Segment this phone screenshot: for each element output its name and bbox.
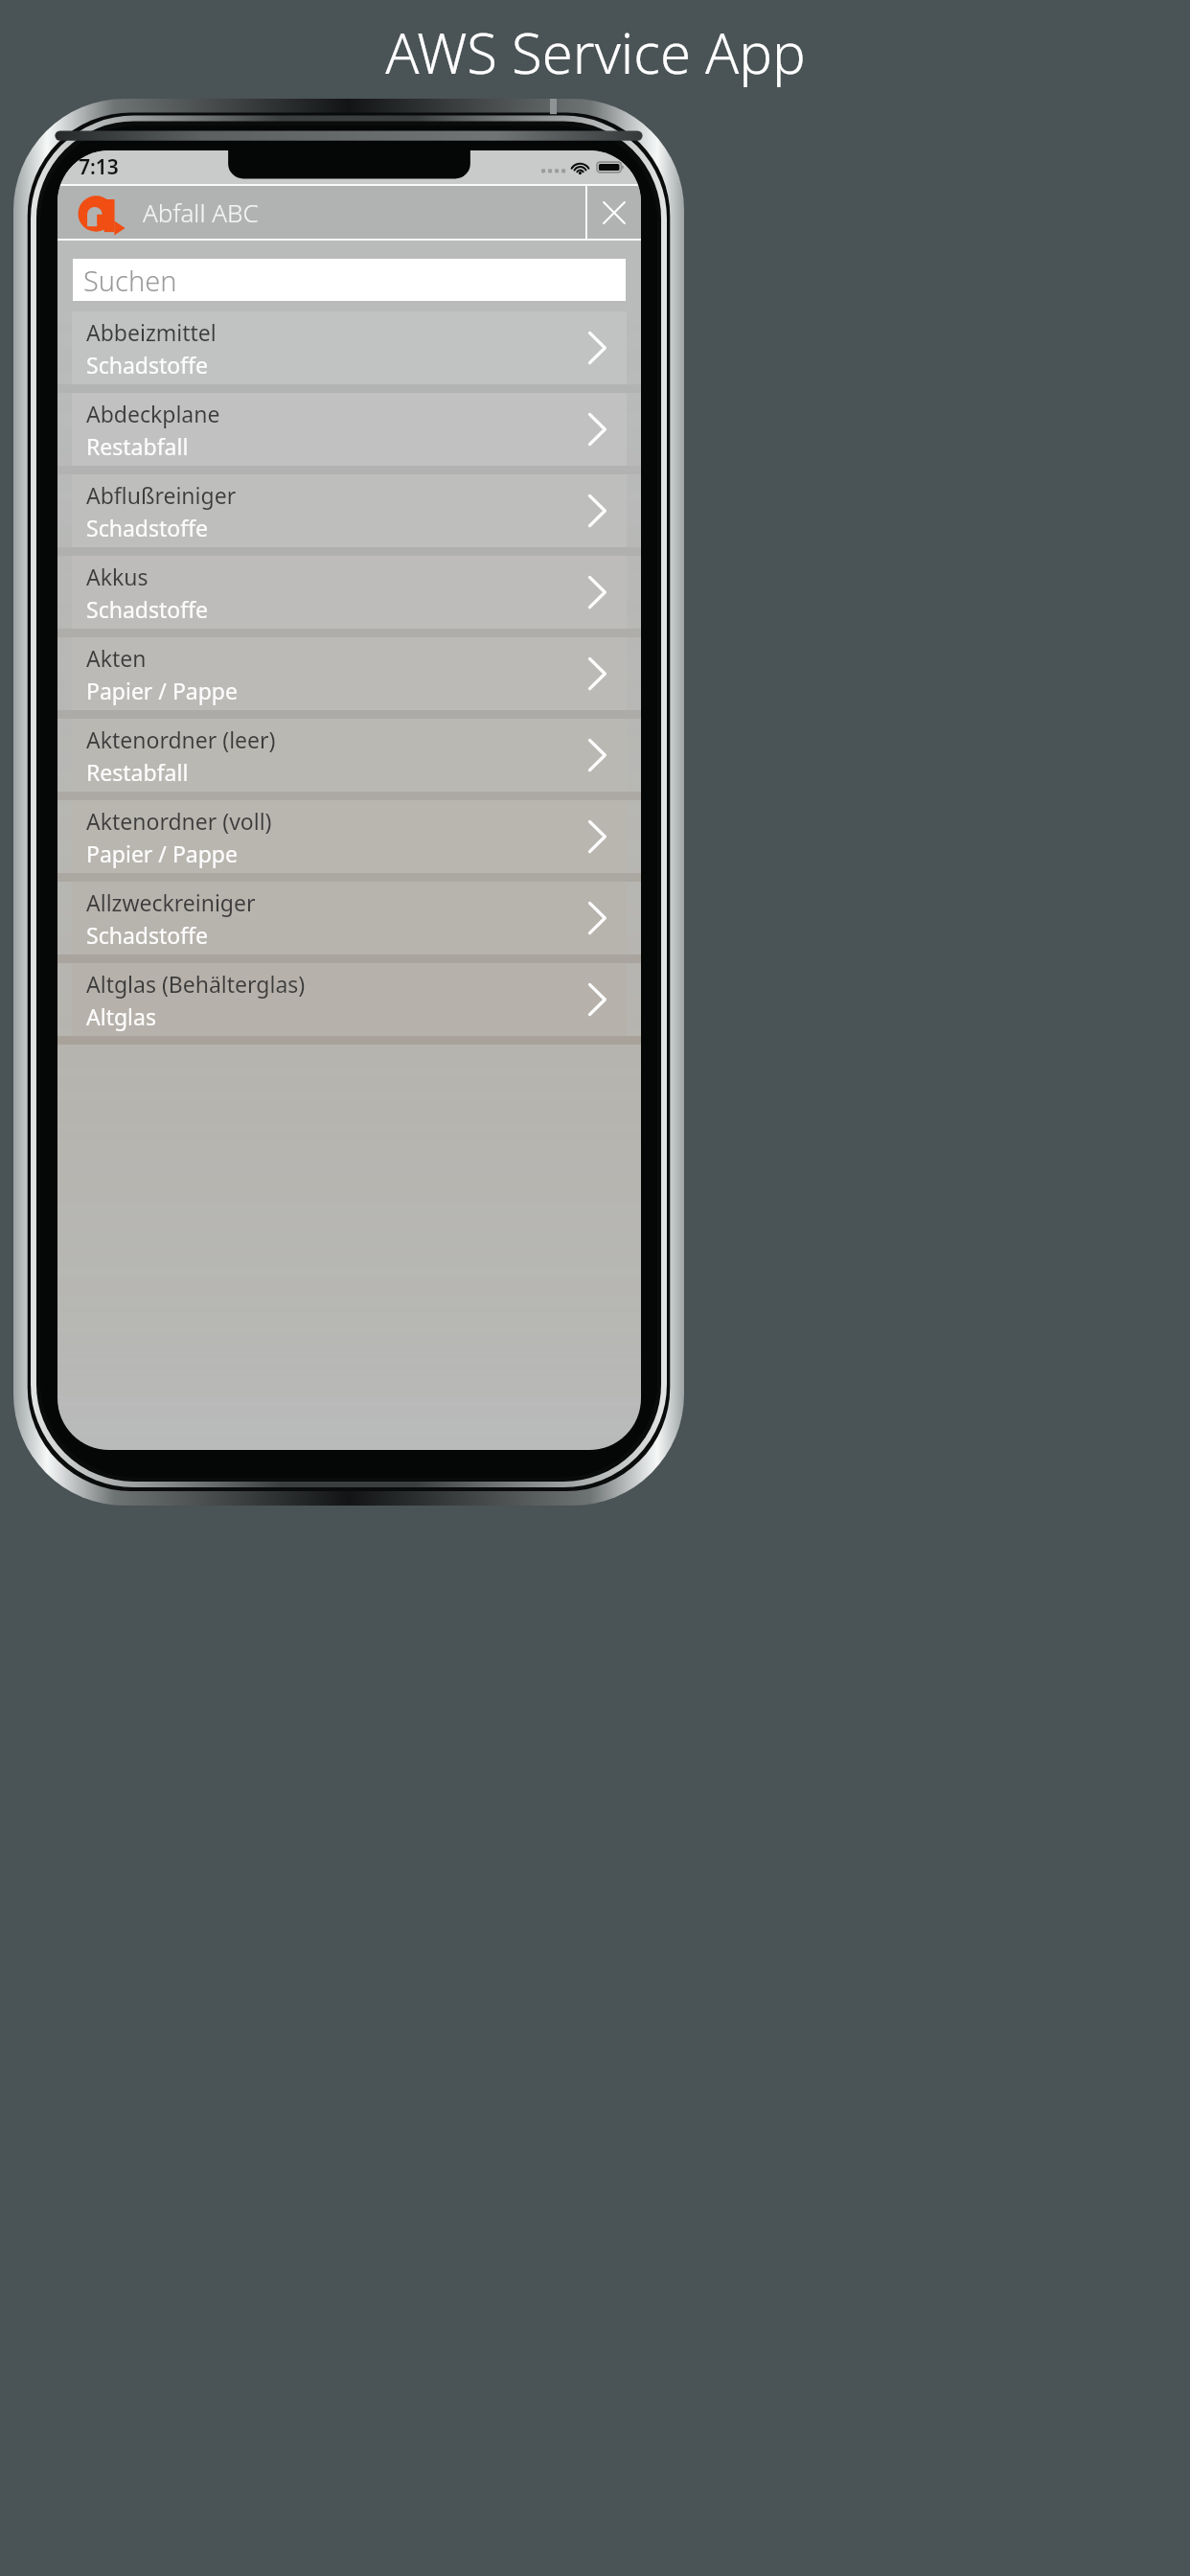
staticText: Restabfall (86, 431, 189, 461)
button[interactable]: Akten (72, 637, 627, 710)
staticText: Restabfall (86, 757, 189, 787)
button[interactable]: Allzweckreiniger (72, 882, 627, 954)
button[interactable]: Altglas (Behälterglas) (72, 963, 627, 1036)
staticText: Abdeckplane (86, 399, 220, 428)
button[interactable]: Akkus (72, 556, 627, 629)
staticText: Altglas (86, 1001, 156, 1031)
staticText: Schadstoffe (86, 513, 208, 542)
staticText: Suchen (83, 262, 177, 299)
button[interactable]: Abflußreiniger (72, 474, 627, 547)
staticText: AWS Service App (385, 14, 806, 90)
staticText: Akkus (86, 562, 149, 591)
staticText: Abbeizmittel (86, 317, 217, 347)
staticText: Altglas (Behälterglas) (86, 969, 306, 999)
staticText: Papier / Pappe (86, 839, 238, 868)
button[interactable]: Abfall ABC (57, 186, 585, 239)
button[interactable]: Suchen (73, 259, 626, 301)
staticText: Akten (86, 643, 147, 673)
staticText: Schadstoffe (86, 594, 208, 624)
staticText: Papier / Pappe (86, 676, 238, 705)
staticText: Schadstoffe (86, 920, 208, 950)
staticText: Aktenordner (leer) (86, 724, 276, 754)
staticText: Abfall ABC (143, 195, 259, 229)
button[interactable]: Aktenordner (leer) (72, 719, 627, 792)
staticText: 7:13 (79, 153, 119, 181)
button[interactable]: Close (587, 186, 641, 239)
staticText: Aktenordner (voll) (86, 806, 272, 836)
staticText: Abflußreiniger (86, 480, 237, 510)
staticText: Schadstoffe (86, 350, 208, 379)
button[interactable]: Abdeckplane (72, 393, 627, 466)
button[interactable]: Aktenordner (voll) (72, 800, 627, 873)
button[interactable]: Abbeizmittel (72, 311, 627, 384)
staticText: Allzweckreiniger (86, 887, 256, 917)
